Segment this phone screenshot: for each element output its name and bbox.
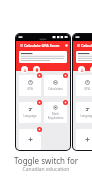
button[interactable]: Toggle — [37, 100, 42, 105]
button[interactable]: Settings — [64, 43, 68, 47]
button[interactable]: Language — [76, 102, 92, 123]
button[interactable]: Toggle — [63, 100, 68, 105]
staticText: GPA — [84, 87, 90, 91]
button[interactable]: Language — [19, 102, 41, 123]
button[interactable]: Toggle — [63, 73, 68, 78]
button[interactable]: GPA — [19, 75, 41, 96]
button[interactable]: Delete — [33, 66, 40, 73]
button[interactable]: Toggle — [37, 73, 42, 78]
button[interactable] — [76, 51, 92, 63]
button[interactable] — [19, 129, 41, 150]
staticText: Calculate GPA Score — [81, 43, 92, 48]
button[interactable]: Calculation — [44, 75, 67, 96]
button[interactable]: Open navigation menu — [76, 43, 80, 47]
button[interactable] — [19, 51, 67, 63]
button[interactable]: GPA — [76, 75, 92, 96]
button[interactable]: Open navigation menu — [19, 43, 23, 47]
staticText: Toggle switch for — [0, 155, 92, 166]
staticText: Mark Regulations — [44, 112, 67, 120]
button[interactable]: Mark Regulations — [44, 102, 67, 123]
button[interactable]: Toggle — [37, 127, 42, 132]
staticText: Language — [23, 114, 37, 118]
staticText: GPA — [27, 87, 33, 91]
button[interactable]: Upload transcript — [21, 66, 28, 73]
staticText: Language — [80, 114, 92, 118]
staticText: Canadian education — [0, 166, 92, 173]
button[interactable] — [76, 129, 92, 150]
button[interactable]: Upload transcript — [78, 66, 85, 73]
staticText: Calculation — [48, 87, 63, 91]
button[interactable]: Delete — [90, 66, 92, 73]
staticText: Calculate GPA Score — [24, 43, 60, 48]
